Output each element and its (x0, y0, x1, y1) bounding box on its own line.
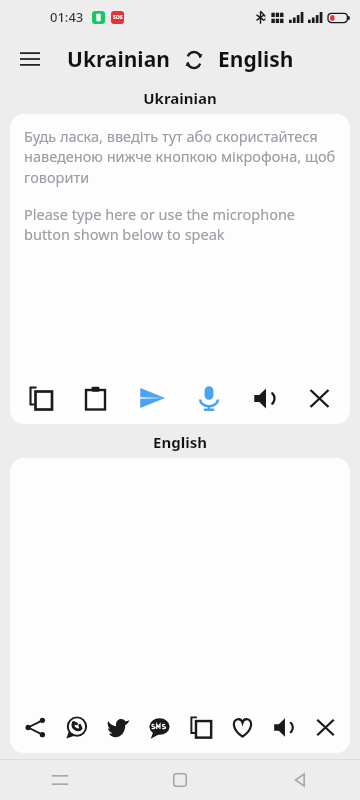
button[interactable]: Twitter (99, 708, 137, 746)
button[interactable]: Share (16, 708, 54, 746)
button[interactable]: Speak (244, 377, 286, 419)
button[interactable]: Microphone (187, 376, 231, 420)
staticText: Ukrainian (67, 45, 170, 74)
button[interactable]: Swap languages (181, 47, 207, 73)
button[interactable]: Speak (265, 708, 303, 746)
staticText: Будь ласка, введіть тут або скористайтес… (24, 126, 338, 188)
button[interactable]: Translate (129, 375, 175, 421)
button[interactable]: Copy (20, 377, 62, 419)
button[interactable]: Copy (182, 708, 220, 746)
button[interactable]: Clear (298, 377, 340, 419)
button[interactable]: Home (120, 760, 240, 800)
button[interactable]: Menu (10, 39, 50, 79)
staticText: Ukrainian (143, 88, 217, 108)
button[interactable]: Back (240, 760, 360, 800)
staticText: 01:43 (50, 8, 84, 26)
button[interactable]: Ukrainian (65, 45, 172, 74)
staticText: Please type here or use the microphone b… (24, 204, 338, 245)
staticText: English (218, 45, 294, 74)
button[interactable]: Favourite (223, 708, 261, 746)
staticText: English (153, 432, 207, 452)
button[interactable]: Будь ласка, введіть тут або скористайтес… (10, 114, 350, 372)
button[interactable]: Clear (306, 708, 344, 746)
button[interactable]: Recents (0, 760, 120, 800)
button[interactable]: WhatsApp (57, 708, 95, 746)
button[interactable]: Paste (74, 377, 116, 419)
button[interactable]: English (216, 45, 296, 74)
staticText: SOS (113, 14, 123, 21)
button[interactable]: SMS (140, 708, 178, 746)
